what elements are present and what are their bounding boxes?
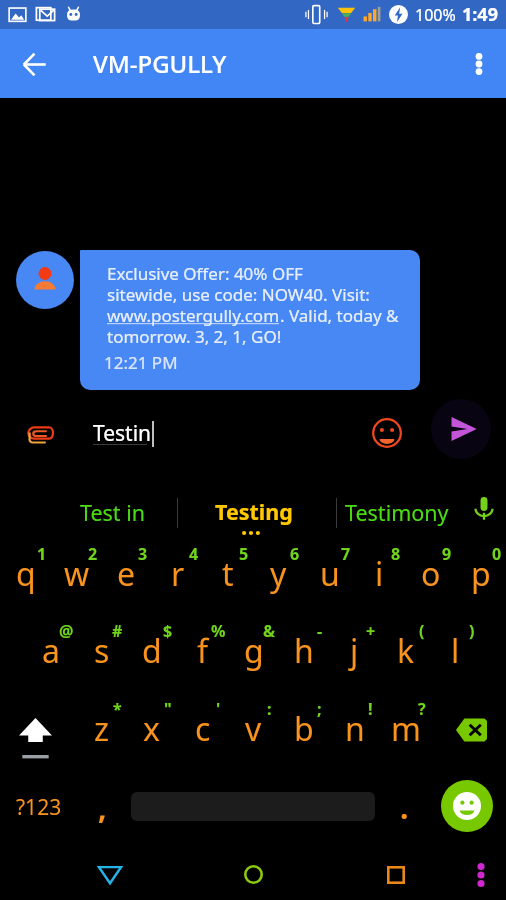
staticText: v (245, 707, 262, 751)
staticText: ) (469, 620, 475, 642)
button[interactable]: Testimony (337, 477, 457, 540)
staticText: 5 (239, 543, 249, 565)
staticText: , (98, 787, 107, 828)
staticText: Testin (93, 419, 152, 448)
staticText: 12:21 PM (104, 351, 178, 374)
staticText: 1 (37, 543, 47, 565)
button[interactable]: 2 (51, 538, 102, 603)
button[interactable]: $ (126, 615, 177, 680)
button[interactable]: * (76, 693, 127, 758)
button[interactable]: ( (380, 615, 431, 680)
button[interactable]: 0 (455, 538, 506, 603)
staticText: ?123 (16, 793, 62, 822)
button[interactable]: Send message (431, 399, 491, 459)
button[interactable]: ! (329, 693, 380, 758)
button[interactable]: Voice input (465, 489, 502, 526)
button[interactable]: - (278, 615, 329, 680)
button[interactable]: Testing (178, 477, 336, 540)
staticText: www.postergully.com (107, 304, 280, 327)
staticText: l (451, 629, 460, 673)
staticText: x (143, 707, 160, 751)
button[interactable]: 8 (354, 538, 405, 603)
staticText: . (400, 787, 409, 828)
staticText: $ (163, 620, 173, 642)
button[interactable]: Home (225, 847, 281, 900)
button[interactable]: ; (278, 693, 329, 758)
button[interactable]: @ (25, 615, 76, 680)
staticText: " (164, 698, 172, 720)
staticText: n (345, 707, 365, 751)
button[interactable]: More options (455, 40, 503, 88)
button[interactable]: Back (82, 847, 138, 900)
staticText: w (64, 552, 90, 596)
button[interactable]: Emoji keyboard (441, 780, 493, 832)
staticText: : (267, 698, 272, 720)
button[interactable]: ? (380, 693, 431, 758)
staticText: VM-PGULLY (93, 47, 227, 80)
staticText: f (197, 629, 209, 673)
staticText: 8 (391, 543, 401, 565)
staticText: 7 (341, 543, 351, 565)
staticText: Exclusive Offer: 40% OFF (107, 262, 303, 285)
button[interactable]: Backspace (430, 718, 506, 783)
staticText: * (113, 698, 122, 720)
staticText: p (471, 552, 491, 596)
button[interactable]: # (76, 615, 127, 680)
staticText: a (42, 629, 60, 673)
button[interactable]: Attach (17, 411, 63, 457)
button[interactable]: Exclusive Offer: 40% OFF (80, 250, 420, 390)
staticText: + (366, 620, 376, 642)
staticText: ! (368, 698, 373, 720)
staticText: e (117, 552, 136, 596)
button[interactable]: : (228, 693, 279, 758)
button[interactable]: . (378, 780, 430, 845)
button[interactable]: 5 (202, 538, 253, 603)
button[interactable]: Shift (0, 718, 76, 783)
button[interactable]: 3 (101, 538, 152, 603)
button[interactable]: Navigate up (11, 40, 59, 88)
staticText: Testing (215, 497, 293, 526)
button[interactable]: ' (177, 693, 228, 758)
staticText: b (294, 707, 314, 751)
staticText: i (375, 552, 384, 596)
button[interactable]: Menu (459, 853, 503, 897)
staticText: z (94, 707, 110, 751)
staticText: d (142, 629, 162, 673)
staticText: g (244, 629, 264, 673)
button[interactable]: + (329, 615, 380, 680)
button[interactable]: Contact avatar (16, 251, 74, 309)
staticText: u (320, 552, 340, 596)
staticText: Testimony (345, 498, 449, 527)
button[interactable]: & (228, 615, 279, 680)
button[interactable]: 7 (304, 538, 355, 603)
staticText: 0 (492, 543, 502, 565)
button[interactable]: Test in (0, 477, 177, 540)
button[interactable]: ?123 (0, 780, 76, 845)
staticText: 6 (290, 543, 300, 565)
staticText: s (94, 629, 110, 673)
staticText: sitewide, use code: NOW40. Visit: (107, 283, 370, 306)
staticText: & (263, 620, 276, 642)
staticText: # (112, 620, 123, 642)
button[interactable]: % (177, 615, 228, 680)
button[interactable]: 9 (405, 538, 456, 603)
staticText: % (211, 620, 226, 642)
button[interactable]: 4 (152, 538, 203, 603)
button[interactable]: 6 (253, 538, 304, 603)
staticText: j (350, 629, 359, 673)
button[interactable]: ) (430, 615, 481, 680)
button[interactable]: 1 (0, 538, 51, 603)
staticText: @ (59, 620, 74, 642)
button[interactable]: , (76, 780, 131, 845)
button[interactable]: " (126, 693, 177, 758)
staticText: 100% (415, 4, 456, 26)
staticText: o (421, 552, 441, 596)
staticText: y (270, 552, 287, 596)
staticText: 9 (442, 543, 452, 565)
staticText: tomorrow. 3, 2, 1, GO! (107, 325, 282, 348)
staticText: 2 (88, 543, 98, 565)
button[interactable]: Insert emoji (365, 411, 409, 455)
staticText: 4 (189, 543, 199, 565)
button[interactable]: Recent apps (368, 847, 424, 900)
